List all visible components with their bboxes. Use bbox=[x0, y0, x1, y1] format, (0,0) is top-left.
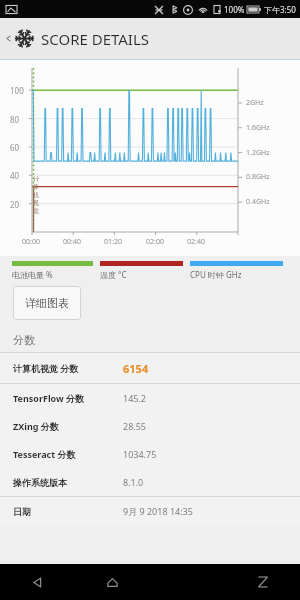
staticText: 算 bbox=[33, 183, 39, 191]
staticText: 日期 bbox=[13, 506, 31, 517]
other: Back bbox=[5, 35, 12, 42]
button[interactable]: ZXing 分数 bbox=[0, 412, 300, 440]
staticText: 电池电量 % bbox=[12, 269, 53, 280]
button[interactable]: Back bbox=[0, 18, 300, 59]
button[interactable]: TensorFlow 分数 bbox=[0, 384, 300, 412]
staticText: 1034.75 bbox=[123, 448, 157, 460]
staticText: 40 bbox=[10, 170, 20, 181]
staticText: 8.1.0 bbox=[123, 476, 144, 488]
staticText: 01:20 bbox=[104, 237, 122, 247]
staticText: TensorFlow 分数 bbox=[13, 392, 85, 404]
button[interactable]: Home bbox=[75, 564, 150, 600]
button[interactable]: Recents bbox=[225, 564, 300, 600]
staticText: 1.6GHz bbox=[246, 123, 270, 133]
staticText: 温度 °C bbox=[100, 269, 127, 280]
staticText: 9月 9 2018 14:35 bbox=[123, 505, 193, 517]
staticText: 分数 bbox=[13, 333, 35, 347]
staticText: 机 bbox=[33, 191, 39, 199]
staticText: 1.2GHz bbox=[246, 148, 270, 158]
staticText: 0.8GHz bbox=[246, 172, 270, 182]
staticText: 00:40 bbox=[63, 237, 81, 247]
button[interactable]: 操作系统版本 bbox=[0, 468, 300, 496]
staticText: 详细图表 bbox=[25, 296, 69, 310]
staticText: 计 bbox=[33, 175, 39, 183]
staticText: 02:40 bbox=[187, 237, 205, 247]
staticText: SCORE DETAILS bbox=[41, 29, 150, 49]
staticText: 2GHz bbox=[246, 98, 264, 108]
staticText: Tesseract 分数 bbox=[13, 448, 76, 460]
staticText: 02:00 bbox=[146, 237, 164, 247]
button[interactable]: Tesseract 分数 bbox=[0, 440, 300, 468]
staticText: 视 bbox=[33, 199, 39, 207]
staticText: 20 bbox=[10, 199, 20, 210]
staticText: 100 bbox=[10, 85, 24, 96]
button[interactable]: Back bbox=[0, 564, 75, 600]
staticText: 操作系统版本 bbox=[13, 477, 67, 488]
staticText: 60 bbox=[10, 142, 20, 153]
staticText: 觉 bbox=[33, 207, 39, 215]
staticText: CPU 时钟 GHz bbox=[190, 269, 242, 280]
staticText: 145.2 bbox=[123, 392, 147, 404]
button[interactable]: 日期 bbox=[0, 497, 300, 525]
staticText: 0.4GHz bbox=[246, 197, 270, 207]
staticText: 计算机视觉 分数 bbox=[13, 362, 79, 374]
staticText: 00:00 bbox=[22, 237, 40, 247]
button[interactable]: 详细图表 bbox=[13, 286, 81, 320]
staticText: ZXing 分数 bbox=[13, 420, 59, 432]
staticText: 80 bbox=[10, 114, 20, 125]
button[interactable]: 计算机视觉 分数 bbox=[0, 353, 300, 383]
staticText: 6154 bbox=[123, 361, 149, 376]
staticText: 下午3:50 bbox=[264, 4, 296, 15]
staticText: 100% bbox=[224, 4, 245, 15]
staticText: 28.55 bbox=[123, 420, 147, 432]
